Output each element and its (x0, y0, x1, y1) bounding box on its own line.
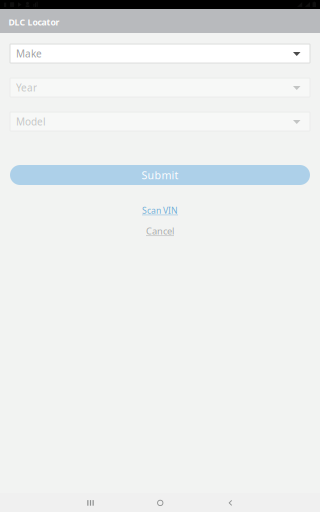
button[interactable]: Cancel (146, 226, 174, 236)
button[interactable]: Submit (10, 165, 310, 185)
staticText: DLC Locator (8, 16, 59, 28)
staticText: Submit (141, 168, 178, 182)
button[interactable]: Recents (55, 493, 125, 512)
staticText: Year (16, 81, 37, 94)
staticText: Cancel (146, 225, 174, 237)
button[interactable]: Back (195, 493, 265, 512)
button[interactable]: Year (10, 78, 310, 97)
button[interactable]: Home (125, 493, 195, 512)
button[interactable]: Make (10, 44, 310, 63)
staticText: Scan VIN (142, 205, 178, 216)
button[interactable]: Model (10, 112, 310, 131)
staticText: Model (16, 115, 46, 128)
button[interactable]: Scan VIN (142, 205, 178, 216)
staticText: Make (16, 47, 42, 60)
